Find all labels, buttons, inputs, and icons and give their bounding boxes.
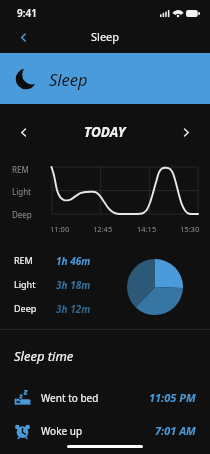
staticText: 11:05 PM: [149, 390, 196, 405]
staticText: 14:15: [137, 224, 157, 234]
staticText: TODAY: [84, 123, 126, 141]
staticText: Sleep: [91, 29, 120, 44]
staticText: Light: [12, 186, 32, 197]
staticText: Deep: [12, 209, 32, 220]
staticText: Sleep: [49, 68, 88, 90]
button[interactable]: Woke up: [0, 414, 210, 447]
button[interactable]: Previous day: [12, 121, 34, 143]
staticText: REM: [12, 164, 29, 175]
staticText: Light: [14, 278, 56, 290]
staticText: Went to bed: [41, 391, 149, 405]
staticText: Deep: [14, 302, 56, 314]
staticText: 3h 12m: [56, 302, 91, 316]
staticText: 1h 46m: [56, 254, 91, 268]
staticText: 12:45: [93, 224, 113, 234]
staticText: Woke up: [41, 424, 155, 438]
button[interactable]: Back: [11, 25, 35, 49]
button[interactable]: Went to bed: [0, 381, 210, 414]
staticText: REM: [14, 254, 56, 266]
staticText: 11:00: [50, 224, 70, 234]
button[interactable]: Next day: [175, 121, 197, 143]
staticText: Sleep time: [14, 347, 74, 365]
staticText: 3h 18m: [56, 278, 91, 292]
staticText: 9:41: [17, 6, 37, 20]
staticText: 7:01 AM: [155, 423, 196, 438]
staticText: 15:30: [180, 224, 200, 234]
